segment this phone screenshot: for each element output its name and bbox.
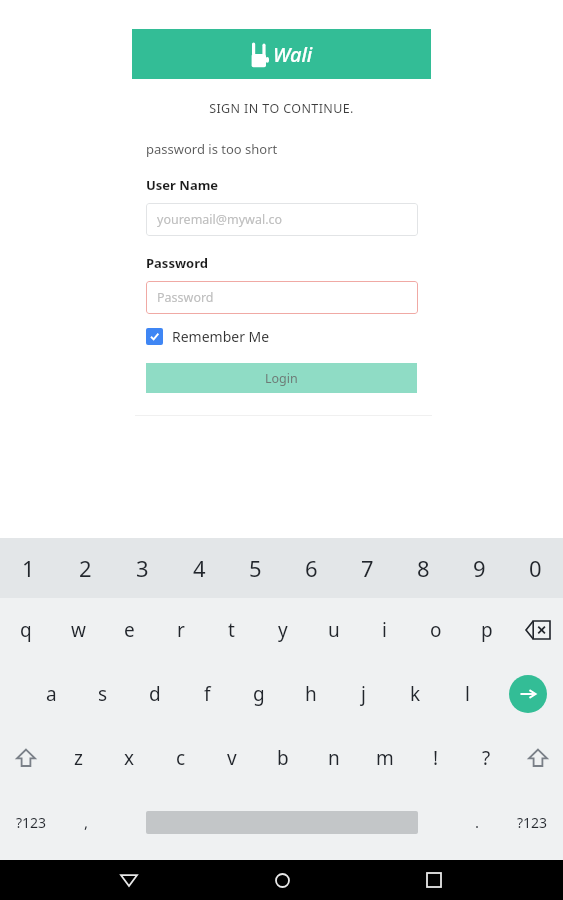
button[interactable]: e: [104, 598, 155, 662]
button[interactable]: a: [26, 662, 77, 726]
button[interactable]: m: [359, 726, 410, 790]
staticText: e: [124, 617, 135, 643]
button[interactable]: x: [104, 726, 155, 790]
button[interactable]: z: [52, 726, 104, 790]
button[interactable]: 5: [227, 538, 283, 598]
staticText: ?123: [16, 813, 47, 832]
button[interactable]: b: [257, 726, 308, 790]
button[interactable]: p: [461, 598, 512, 662]
button[interactable]: w: [52, 598, 104, 662]
button[interactable]: youremail@mywal.co: [146, 203, 418, 236]
staticText: p: [481, 617, 493, 643]
staticText: k: [410, 681, 421, 707]
button[interactable]: y: [257, 598, 308, 662]
staticText: n: [328, 745, 340, 771]
staticText: 6: [305, 553, 318, 583]
button[interactable]: 8: [395, 538, 451, 598]
staticText: v: [227, 745, 237, 771]
staticText: z: [74, 745, 83, 771]
staticText: b: [277, 745, 289, 771]
staticText: ,: [84, 812, 89, 832]
staticText: 4: [193, 553, 206, 583]
button[interactable]: 2: [57, 538, 114, 598]
button[interactable]: 0: [507, 538, 563, 598]
staticText: a: [46, 681, 57, 707]
button[interactable]: r: [155, 598, 206, 662]
button[interactable]: Shift: [0, 726, 52, 790]
button[interactable]: 7: [339, 538, 395, 598]
button[interactable]: ?: [461, 726, 512, 790]
staticText: q: [20, 617, 32, 643]
button[interactable]: 9: [451, 538, 507, 598]
staticText: Remember Me: [172, 327, 270, 346]
staticText: 9: [473, 553, 486, 583]
button[interactable]: u: [308, 598, 359, 662]
button[interactable]: Remember Me: [146, 327, 270, 346]
staticText: l: [465, 681, 470, 707]
staticText: s: [98, 681, 108, 707]
button[interactable]: t: [206, 598, 257, 662]
button[interactable]: Back: [105, 860, 153, 900]
button[interactable]: n: [308, 726, 359, 790]
button[interactable]: Login: [146, 363, 417, 393]
button[interactable]: i: [359, 598, 410, 662]
staticText: ?123: [517, 813, 548, 832]
button[interactable]: h: [285, 662, 337, 726]
staticText: 7: [361, 553, 374, 583]
staticText: d: [149, 681, 161, 707]
staticText: 0: [529, 553, 542, 583]
button[interactable]: .: [453, 790, 501, 854]
button[interactable]: ?123: [0, 790, 62, 854]
button[interactable]: Enter: [493, 662, 563, 726]
button[interactable]: Recents: [410, 860, 458, 900]
button[interactable]: v: [206, 726, 257, 790]
staticText: Password: [157, 289, 214, 306]
staticText: SIGN IN TO CONTINUE.: [0, 100, 563, 117]
staticText: Login: [265, 370, 298, 387]
staticText: User Name: [146, 176, 219, 194]
button[interactable]: Home: [258, 860, 306, 900]
button[interactable]: c: [155, 726, 206, 790]
button[interactable]: 4: [171, 538, 227, 598]
staticText: y: [278, 617, 288, 643]
button[interactable]: Space: [110, 790, 453, 854]
button[interactable]: d: [129, 662, 181, 726]
button[interactable]: Backspace: [512, 598, 563, 662]
button[interactable]: j: [337, 662, 389, 726]
staticText: j: [361, 681, 366, 707]
staticText: t: [228, 617, 235, 643]
staticText: r: [177, 617, 185, 643]
button[interactable]: f: [181, 662, 233, 726]
staticText: 1: [22, 553, 35, 583]
button[interactable]: Shift: [512, 726, 563, 790]
staticText: password is too short: [146, 140, 278, 158]
button[interactable]: l: [441, 662, 493, 726]
staticText: m: [376, 745, 394, 771]
staticText: Password: [146, 254, 208, 272]
staticText: c: [176, 745, 186, 771]
staticText: ?: [482, 745, 491, 771]
button[interactable]: ?123: [501, 790, 563, 854]
button[interactable]: !: [410, 726, 461, 790]
staticText: w: [71, 617, 86, 643]
button[interactable]: 1: [0, 538, 57, 598]
button[interactable]: 3: [114, 538, 171, 598]
button[interactable]: s: [77, 662, 129, 726]
staticText: youremail@mywal.co: [157, 211, 283, 228]
staticText: 5: [249, 553, 262, 583]
button[interactable]: g: [233, 662, 285, 726]
staticText: g: [253, 681, 265, 707]
button[interactable]: Wali: [132, 29, 431, 79]
button[interactable]: q: [0, 598, 52, 662]
staticText: 8: [417, 553, 430, 583]
staticText: !: [433, 745, 439, 771]
button[interactable]: o: [410, 598, 461, 662]
button[interactable]: Password: [146, 281, 418, 314]
button[interactable]: 6: [283, 538, 339, 598]
staticText: h: [305, 681, 317, 707]
staticText: Wali: [273, 41, 313, 68]
button[interactable]: k: [389, 662, 441, 726]
button[interactable]: ,: [62, 790, 110, 854]
staticText: u: [328, 617, 340, 643]
staticText: 2: [79, 553, 92, 583]
